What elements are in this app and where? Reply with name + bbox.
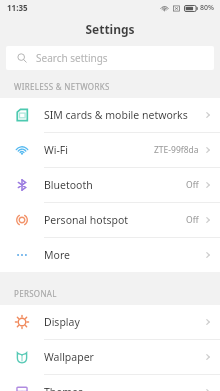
staticText: PERSONAL — [14, 288, 57, 299]
button[interactable]: More — [0, 238, 220, 272]
staticText: WIRELESS & NETWORKS — [14, 81, 110, 92]
staticText: Themes — [44, 385, 204, 391]
staticText: Wi-Fi — [44, 143, 154, 157]
staticText: Off — [186, 179, 199, 191]
staticText: 11:35 — [7, 2, 28, 13]
button[interactable]: SIM cards & mobile networks — [0, 98, 220, 132]
staticText: Bluetooth — [44, 178, 186, 192]
staticText: ZTE-99f8da — [154, 144, 199, 156]
staticText: Off — [186, 214, 199, 226]
staticText: Search settings — [36, 51, 108, 65]
staticText: Display — [44, 315, 204, 329]
staticText: Settings — [85, 21, 135, 37]
staticText: Personal hotspot — [44, 213, 186, 227]
staticText: 80% — [200, 3, 214, 13]
button[interactable]: Display — [0, 305, 220, 339]
button[interactable]: Wi-Fi — [0, 133, 220, 167]
button[interactable]: Bluetooth — [0, 168, 220, 202]
staticText: Wallpaper — [44, 350, 204, 364]
button[interactable]: Personal hotspot — [0, 203, 220, 237]
staticText: More — [44, 248, 204, 262]
button[interactable]: Search settings — [6, 46, 214, 70]
button[interactable]: Themes — [0, 375, 220, 391]
button[interactable]: Wallpaper — [0, 340, 220, 374]
staticText: SIM cards & mobile networks — [44, 108, 204, 122]
